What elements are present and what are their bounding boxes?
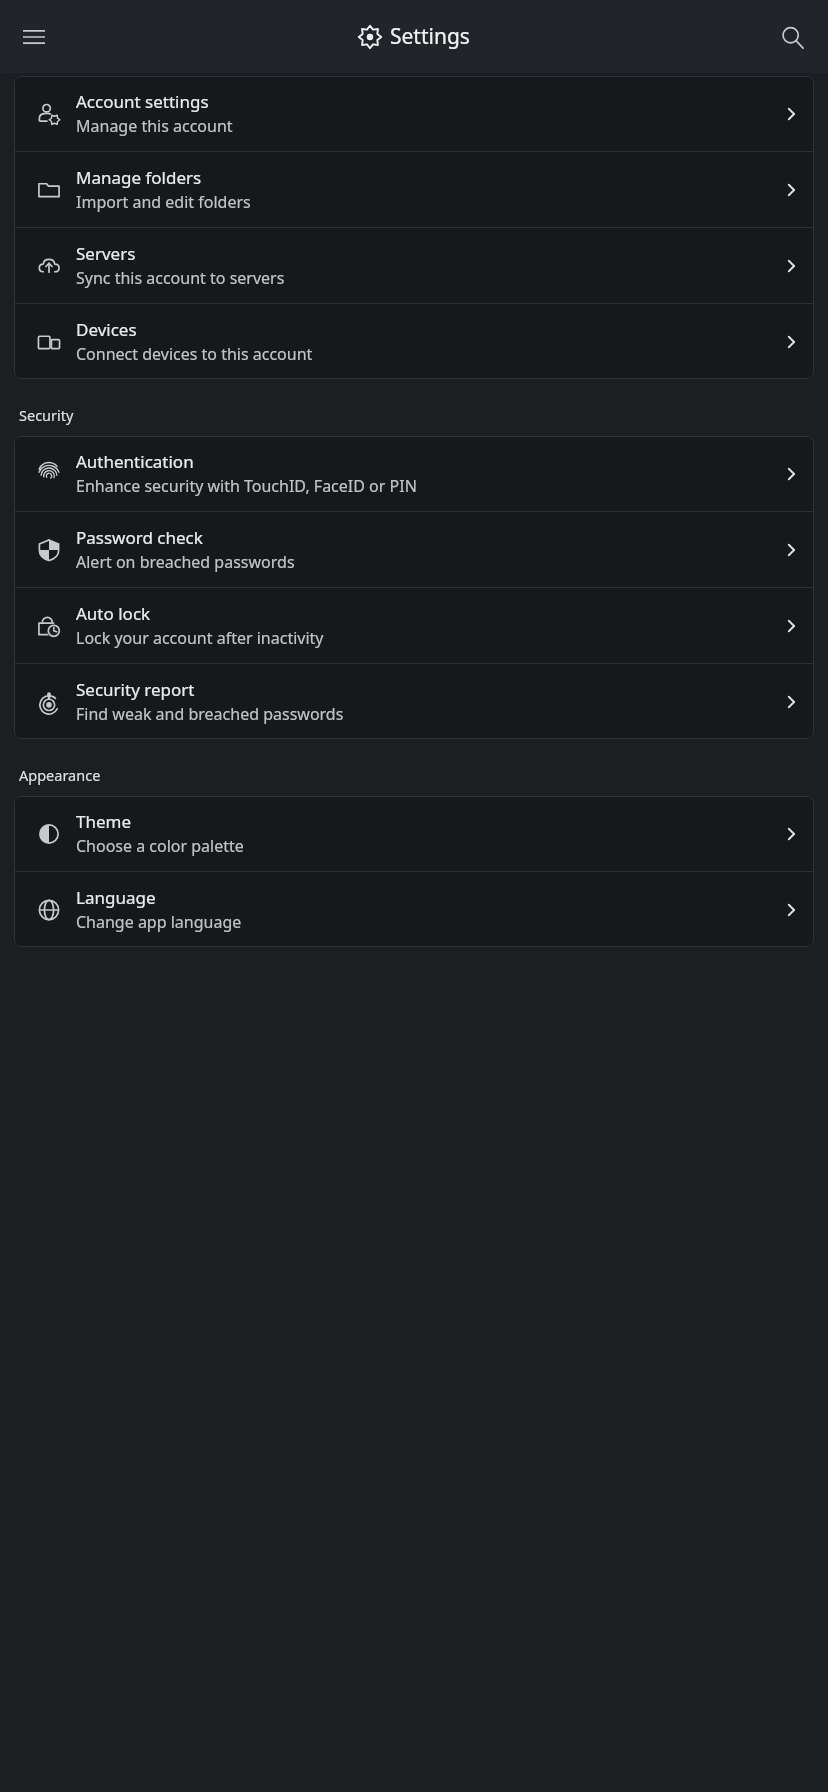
button[interactable]: Password check [14, 512, 814, 587]
button[interactable]: Account settings [14, 76, 814, 151]
staticText: Alert on breached passwords [76, 551, 295, 573]
staticText: Change app language [76, 911, 242, 933]
staticText: Manage this account [76, 115, 233, 137]
staticText: Devices [76, 318, 137, 341]
staticText: Security report [76, 678, 195, 701]
button[interactable]: Auto lock [14, 588, 814, 663]
button[interactable]: Security report [14, 664, 814, 739]
staticText: Auto lock [76, 602, 151, 625]
button[interactable]: Authentication [14, 436, 814, 511]
staticText: Servers [76, 242, 136, 265]
staticText: Password check [76, 526, 203, 549]
button[interactable]: Devices [14, 304, 814, 379]
staticText: Settings [390, 22, 470, 51]
button[interactable]: Servers [14, 228, 814, 303]
button[interactable]: Manage folders [14, 152, 814, 227]
staticText: Sync this account to servers [76, 267, 285, 289]
staticText: Theme [76, 810, 132, 833]
staticText: Lock your account after inactivity [76, 627, 324, 649]
staticText: Manage folders [76, 166, 202, 189]
staticText: Authentication [76, 450, 194, 473]
staticText: Connect devices to this account [76, 343, 313, 365]
staticText: Choose a color palette [76, 835, 244, 857]
staticText: Enhance security with TouchID, FaceID or… [76, 475, 417, 497]
staticText: Account settings [76, 90, 209, 113]
button[interactable]: Search [768, 13, 816, 61]
button[interactable]: Open navigation menu [10, 13, 58, 61]
staticText: Appearance [19, 765, 101, 785]
button[interactable]: Theme [14, 796, 814, 871]
staticText: Find weak and breached passwords [76, 703, 344, 725]
staticText: Security [19, 405, 74, 425]
staticText: Language [76, 886, 156, 909]
staticText: Import and edit folders [76, 191, 251, 213]
button[interactable]: Language [14, 872, 814, 947]
